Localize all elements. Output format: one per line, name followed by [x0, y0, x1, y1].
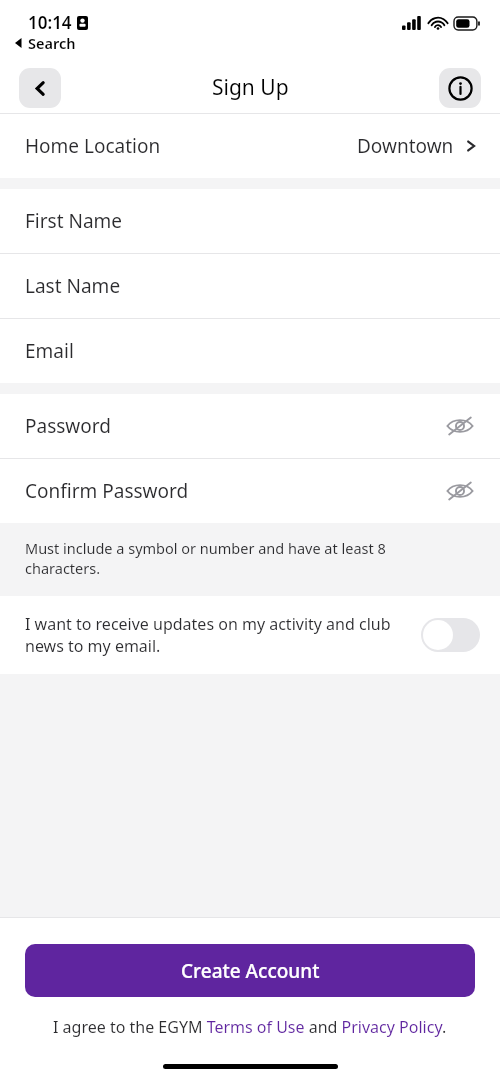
staticText: Confirm Password: [25, 478, 189, 504]
staticText: First Name: [25, 208, 123, 234]
staticText: Home Location: [25, 133, 161, 159]
button[interactable]: Last Name: [0, 254, 500, 318]
button[interactable]: Info: [439, 68, 481, 108]
staticText: Search: [28, 33, 76, 53]
staticText: Last Name: [25, 273, 121, 299]
staticText: Create Account: [181, 958, 320, 984]
staticText: I agree to the EGYM Terms of Use and Pri…: [53, 1016, 447, 1038]
button[interactable]: Show password: [440, 471, 480, 511]
button[interactable]: Show password: [440, 406, 480, 446]
button[interactable]: Back: [19, 68, 61, 108]
button[interactable]: I want to receive updates on my activity…: [0, 596, 500, 674]
button[interactable]: Receive updates toggle: [421, 618, 480, 652]
staticText: Must include a symbol or number and have…: [25, 538, 430, 578]
staticText: Email: [25, 338, 74, 364]
button[interactable]: First Name: [0, 189, 500, 253]
staticText: Downtown: [357, 133, 454, 159]
button[interactable]: Password: [0, 394, 500, 458]
button[interactable]: I agree to the EGYM Terms of Use and Pri…: [0, 1016, 500, 1038]
button[interactable]: Confirm Password: [0, 459, 500, 523]
button[interactable]: Email: [0, 319, 500, 383]
staticText: 10:14: [28, 11, 72, 34]
staticText: I want to receive updates on my activity…: [25, 613, 407, 657]
staticText: Password: [25, 413, 111, 439]
staticText: Sign Up: [212, 73, 289, 102]
button[interactable]: Create Account: [25, 944, 475, 997]
button[interactable]: Home Location: [0, 114, 500, 178]
